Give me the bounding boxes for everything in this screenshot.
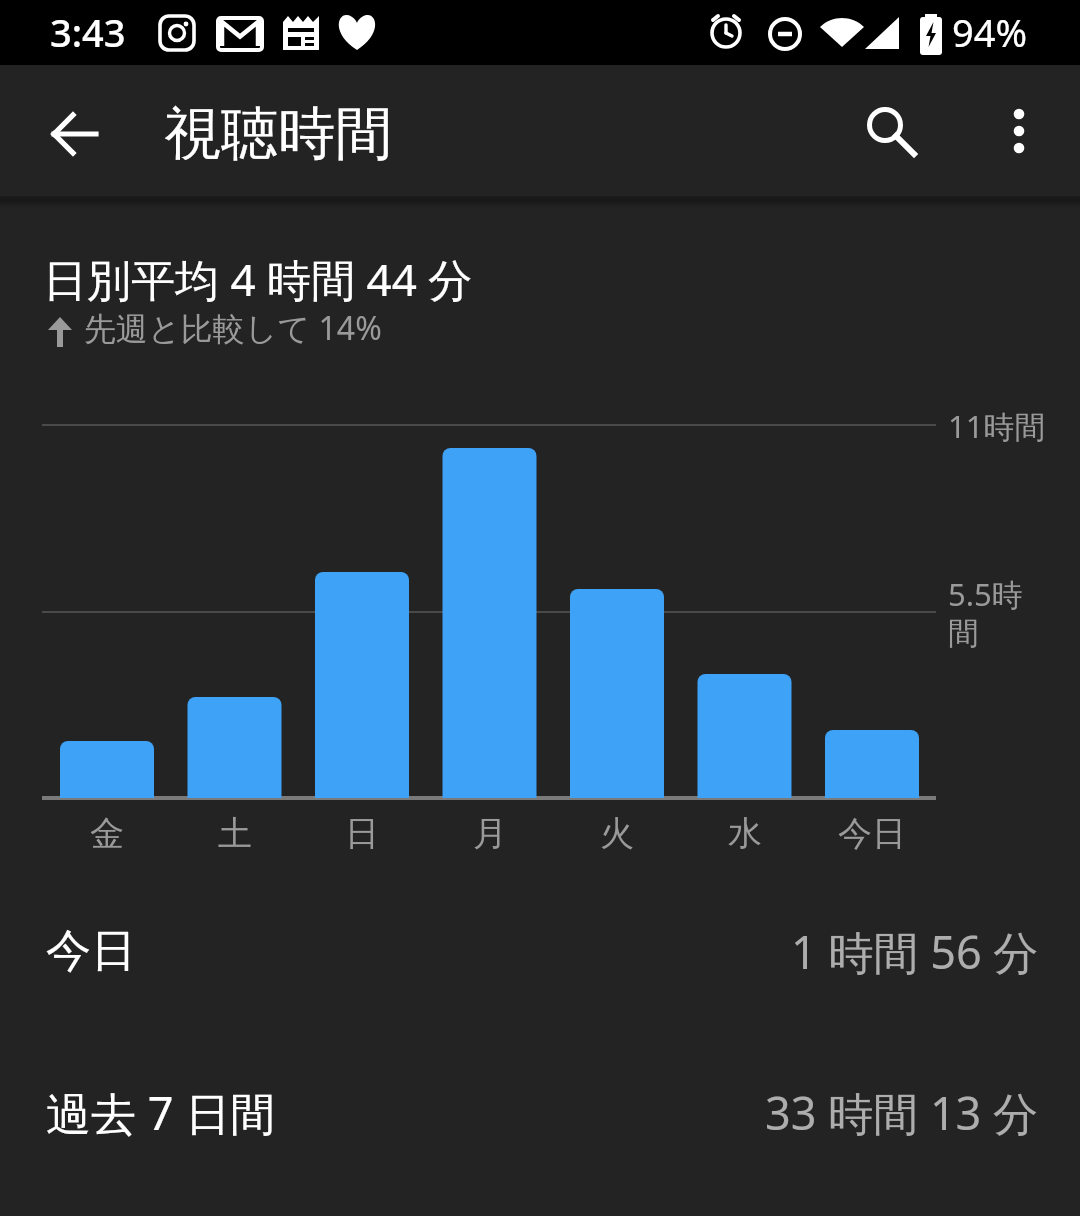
staticText: 土	[175, 812, 295, 855]
staticText: 3:43	[50, 6, 126, 58]
staticText: 水	[685, 812, 805, 855]
staticText: 11時間	[948, 405, 1046, 447]
staticText: 過去 7 日間	[46, 1082, 276, 1143]
staticText: 視聴時間	[164, 98, 392, 170]
staticText: 94%	[952, 6, 1028, 58]
button[interactable]	[984, 90, 1054, 160]
staticText: 金	[47, 812, 167, 855]
staticText: 月	[430, 812, 550, 855]
button[interactable]: 過去 7 日間	[46, 1073, 1039, 1151]
button[interactable]: 今日	[46, 912, 1039, 990]
staticText: 日	[302, 812, 422, 855]
staticText: 5.5時間	[948, 573, 1036, 654]
staticText: 先週と比較して 14%	[84, 306, 382, 350]
staticText: 今日	[46, 923, 136, 980]
staticText: 1 時間 56 分	[791, 921, 1039, 982]
staticText: 火	[557, 812, 677, 855]
staticText: 33 時間 13 分	[765, 1082, 1039, 1143]
button[interactable]	[40, 160, 110, 230]
staticText: 今日	[812, 812, 932, 855]
button[interactable]	[850, 90, 920, 160]
staticText: 日別平均 4 時間 44 分	[43, 249, 473, 309]
